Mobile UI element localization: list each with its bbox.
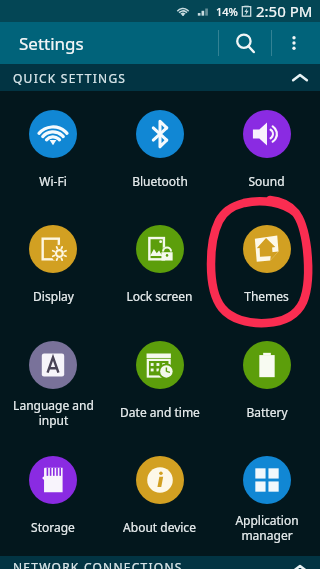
button[interactable]: Battery: [213, 333, 320, 438]
button[interactable]: QUICK SETTINGS: [0, 64, 320, 91]
staticText: Themes: [244, 288, 289, 304]
staticText: Display: [33, 288, 74, 304]
staticText: About device: [123, 519, 196, 535]
button[interactable]: Sound: [213, 102, 320, 207]
staticText: Wi-Fi: [39, 173, 67, 189]
staticText: Application manager: [235, 512, 299, 543]
button[interactable]: Storage: [0, 448, 106, 553]
staticText: NETWORK CONNECTIONS: [13, 559, 183, 569]
button[interactable]: NETWORK CONNECTIONS: [0, 556, 320, 569]
button[interactable]: More options: [272, 22, 316, 64]
staticText: Storage: [31, 519, 75, 535]
staticText: Date and time: [120, 404, 200, 420]
button[interactable]: Lock screen: [106, 217, 213, 322]
button[interactable]: Themes: [213, 217, 320, 322]
button[interactable]: Application manager: [213, 448, 320, 553]
staticText: Battery: [246, 404, 288, 420]
button[interactable]: Date and time: [106, 333, 213, 438]
button[interactable]: Wi-Fi: [0, 102, 106, 207]
staticText: 14%: [216, 4, 238, 19]
staticText: Settings: [19, 32, 84, 55]
button[interactable]: Search: [219, 22, 271, 64]
staticText: Lock screen: [126, 288, 193, 304]
staticText: Sound: [248, 173, 285, 189]
button[interactable]: Bluetooth: [106, 102, 213, 207]
staticText: 2:50 PM: [256, 1, 313, 21]
button[interactable]: Display: [0, 217, 106, 322]
button[interactable]: Language and input: [0, 333, 106, 438]
button[interactable]: About device: [106, 448, 213, 553]
staticText: QUICK SETTINGS: [13, 70, 127, 86]
staticText: Bluetooth: [132, 173, 188, 189]
staticText: Language and input: [13, 397, 94, 428]
